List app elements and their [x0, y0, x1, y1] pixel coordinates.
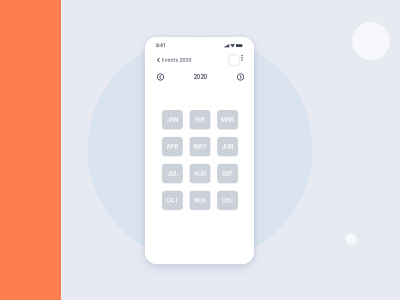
staticText: DEC	[222, 197, 233, 204]
button[interactable]: More options	[240, 53, 244, 67]
button[interactable]: MAY	[189, 137, 210, 156]
staticText: Events 2020	[162, 57, 192, 63]
staticText: FEB	[195, 116, 205, 123]
staticText: APR	[166, 143, 178, 150]
button[interactable]: FEB	[189, 110, 210, 129]
button[interactable]: JAN	[162, 110, 183, 129]
button[interactable]: DEC	[217, 191, 238, 210]
staticText: OCT	[166, 197, 178, 204]
button[interactable]: Previous year	[156, 72, 165, 81]
staticText: NOV	[194, 197, 206, 204]
button[interactable]: MAR	[217, 110, 238, 129]
staticText: AUG	[194, 170, 206, 177]
staticText: JAN	[167, 116, 178, 123]
staticText: 9:41	[156, 43, 165, 48]
button[interactable]: Events 2020	[157, 55, 192, 66]
staticText: 2020	[193, 74, 207, 80]
button[interactable]: JUL	[162, 164, 183, 183]
staticText: JUL	[167, 170, 177, 177]
button[interactable]: NOV	[189, 191, 210, 210]
button[interactable]: OCT	[162, 191, 183, 210]
button[interactable]: Profile	[228, 53, 240, 67]
button[interactable]: SEP	[217, 164, 238, 183]
button[interactable]: APR	[162, 137, 183, 156]
button[interactable]: Next year	[236, 72, 245, 81]
staticText: JUN	[222, 143, 233, 150]
button[interactable]: AUG	[189, 164, 210, 183]
staticText: SEP	[222, 170, 233, 177]
staticText: MAR	[221, 116, 234, 123]
staticText: MAY	[193, 143, 206, 150]
button[interactable]: JUN	[217, 137, 238, 156]
